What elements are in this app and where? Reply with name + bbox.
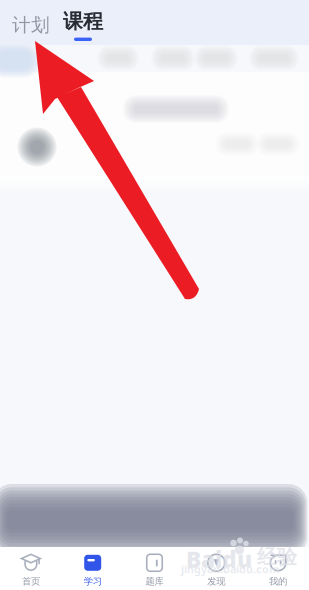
staticText: 课程 <box>63 9 103 34</box>
staticText: Baidu <box>186 544 252 574</box>
button[interactable]: 首页 <box>0 543 62 590</box>
staticText: 首页 <box>22 576 40 587</box>
button[interactable]: 我的 <box>247 543 309 590</box>
staticText: 经验 <box>257 545 297 569</box>
button[interactable]: 学习 <box>62 543 124 590</box>
staticText: 发现 <box>207 576 225 587</box>
button[interactable]: 发现 <box>185 543 247 590</box>
button[interactable]: 题库 <box>124 543 185 590</box>
staticText: 题库 <box>145 576 163 587</box>
button[interactable]: 课程 <box>58 9 108 41</box>
button[interactable]: 计划 <box>8 11 54 38</box>
staticText: 我的 <box>269 576 287 587</box>
staticText: 计划 <box>12 13 50 36</box>
staticText: 学习 <box>84 576 102 587</box>
staticText: jingyan.baidu.com <box>181 562 279 576</box>
